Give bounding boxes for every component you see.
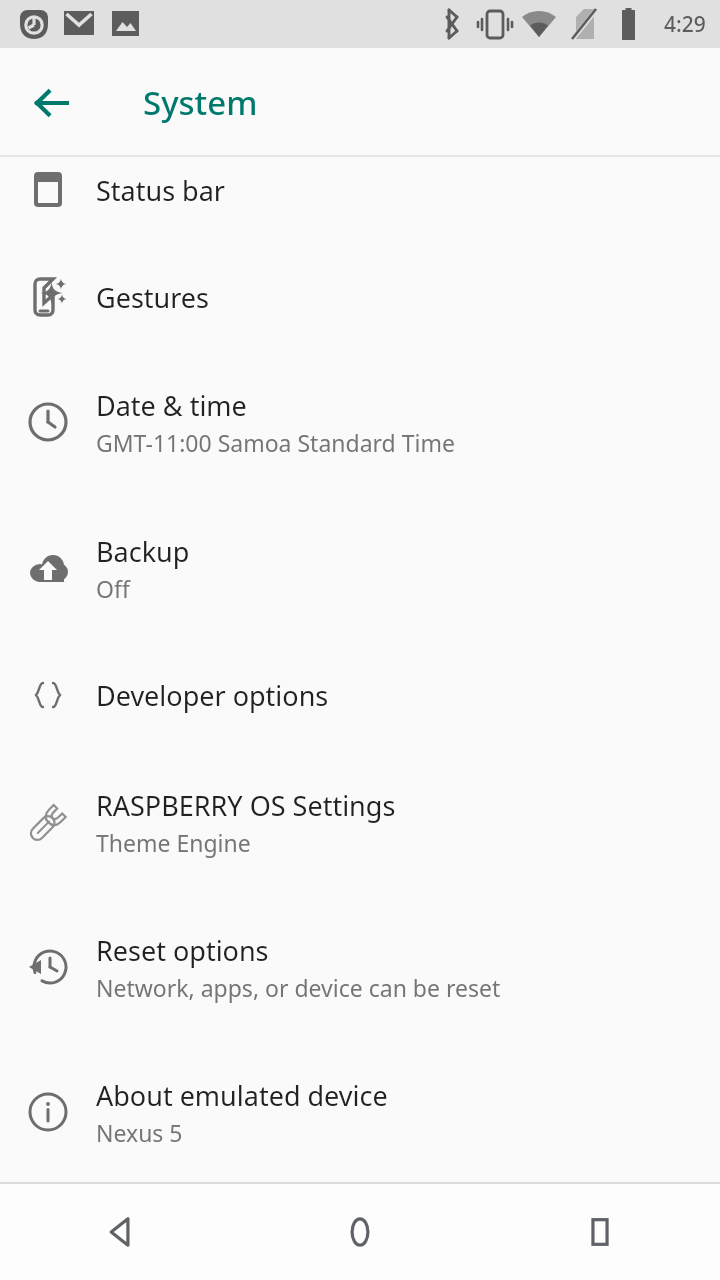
button[interactable]: RASPBERRY OS Settings: [0, 770, 720, 874]
staticText: Off: [96, 573, 130, 604]
staticText: Nexus 5: [96, 1117, 183, 1148]
staticText: GMT-11:00 Samoa Standard Time: [96, 427, 455, 458]
button[interactable]: About emulated device: [0, 1060, 720, 1164]
button[interactable]: Recents: [480, 1184, 720, 1280]
staticText: About emulated device: [96, 1077, 388, 1114]
button[interactable]: Home: [240, 1184, 480, 1280]
button[interactable]: Back: [16, 67, 88, 139]
button[interactable]: Gestures: [0, 245, 720, 349]
button[interactable]: Developer options: [0, 643, 720, 747]
staticText: 4:29: [664, 10, 706, 39]
staticText: Gestures: [96, 279, 210, 316]
button[interactable]: Back: [0, 1184, 240, 1280]
staticText: RASPBERRY OS Settings: [96, 787, 396, 824]
staticText: System: [143, 80, 258, 125]
staticText: Date & time: [96, 387, 247, 424]
staticText: Theme Engine: [96, 827, 251, 858]
staticText: Status bar: [96, 172, 226, 209]
staticText: Network, apps, or device can be reset: [96, 972, 501, 1003]
button[interactable]: Reset options: [0, 915, 720, 1019]
staticText: Backup: [96, 533, 190, 570]
staticText: Reset options: [96, 932, 269, 969]
button[interactable]: Backup: [0, 516, 720, 620]
staticText: Developer options: [96, 677, 329, 714]
button[interactable]: Date & time: [0, 370, 720, 474]
button[interactable]: Status bar: [0, 138, 720, 242]
